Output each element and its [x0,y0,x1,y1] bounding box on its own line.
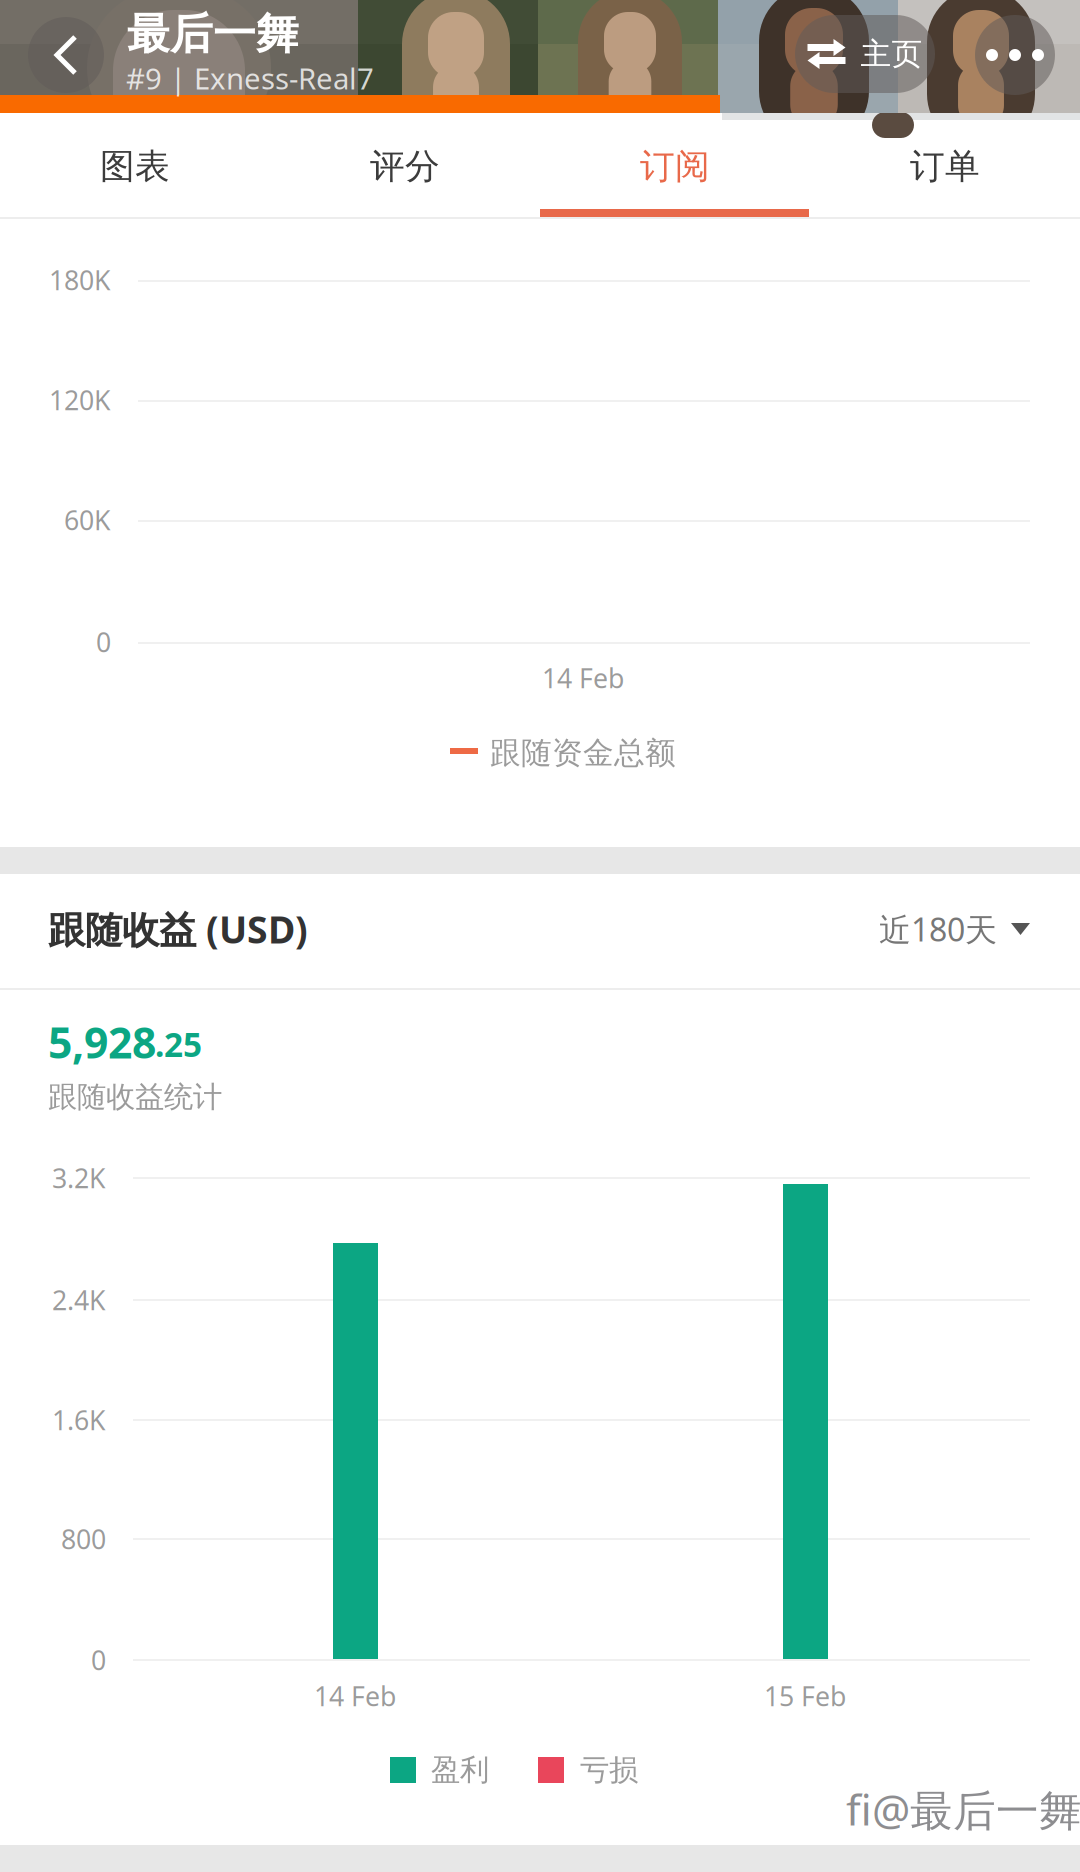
staticText: 主页 [860,35,922,73]
button[interactable]: Back [28,17,104,93]
staticText: 0 [96,624,111,660]
staticText: 14 Feb [542,660,624,696]
staticText: 3.2K [52,1160,106,1196]
staticText: 1.6K [52,1402,106,1438]
button[interactable]: 近180天 [870,899,1030,959]
staticText: 盈利 [431,1752,489,1788]
button[interactable]: More [975,15,1055,95]
staticText: 跟随资金总额 [490,734,676,772]
staticText: #9 | Exness-Real7 [126,58,374,97]
staticText: 60K [64,502,111,538]
staticText: 订单 [910,145,980,188]
staticText: 800 [61,1521,106,1557]
button[interactable]: 图表 [0,113,270,220]
staticText: 120K [49,382,111,418]
staticText: 180K [49,262,111,298]
button[interactable]: 主页 [795,15,935,93]
staticText: 5,928 [48,1014,156,1070]
staticText: 14 Feb [314,1678,396,1714]
staticText: 评分 [370,145,440,188]
button[interactable]: 订单 [810,113,1080,220]
staticText: 跟随收益 (USD) [48,904,308,954]
staticText: 近180天 [879,908,997,950]
staticText: 15 Feb [764,1678,846,1714]
staticText: .25 [155,1022,202,1066]
staticText: 订阅 [640,145,710,188]
staticText: 最后一舞 [127,8,299,60]
button[interactable]: 评分 [270,113,540,220]
staticText: 0 [91,1642,106,1678]
staticText: ﬁ@最后一舞 [846,1781,1080,1837]
staticText: 图表 [100,145,170,188]
staticText: 2.4K [52,1282,106,1318]
staticText: 亏损 [580,1752,638,1788]
button[interactable]: 订阅 [540,113,810,220]
staticText: 跟随收益统计 [48,1079,222,1115]
